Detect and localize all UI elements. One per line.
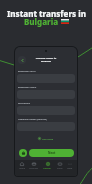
staticText: Accounts [29,167,38,170]
button[interactable]: Cards [56,160,64,170]
button[interactable]: More [66,160,74,170]
staticText: Transfer [43,167,52,170]
staticText: Instant transfers in [7,8,86,19]
staticText: Home [19,167,25,170]
staticText: Bulgaria [24,16,59,27]
button[interactable]: Next [29,149,74,157]
button[interactable]: Transfer [42,160,53,170]
staticText: Additional details (optional) [18,118,47,121]
staticText: More [67,167,73,170]
staticText: Beneficiary name [18,86,37,89]
staticText: Add more [42,137,54,140]
button[interactable]: Back [18,56,26,64]
button[interactable]: Home [18,160,26,170]
button[interactable]: Accounts [28,160,39,170]
staticText: Description [18,102,31,105]
button[interactable]: Add more [36,136,56,141]
button[interactable]: Saved recipients [19,149,27,157]
staticText: Cards [57,167,63,170]
staticText: Transfer funds to Bulgaria [15,56,77,63]
staticText: Next [48,151,56,155]
staticText: Beneficiary IBAN [18,70,36,73]
